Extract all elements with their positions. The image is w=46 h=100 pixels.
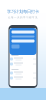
staticText: 让每一天的学习都可见 — [8, 16, 38, 19]
staticText: 学习计划每日打卡 — [7, 9, 39, 14]
button[interactable]: Plan item — [11, 56, 34, 61]
button[interactable]: Plan item — [11, 70, 34, 75]
button[interactable]: Plan item — [11, 61, 34, 66]
button[interactable]: Plan item — [11, 75, 34, 80]
